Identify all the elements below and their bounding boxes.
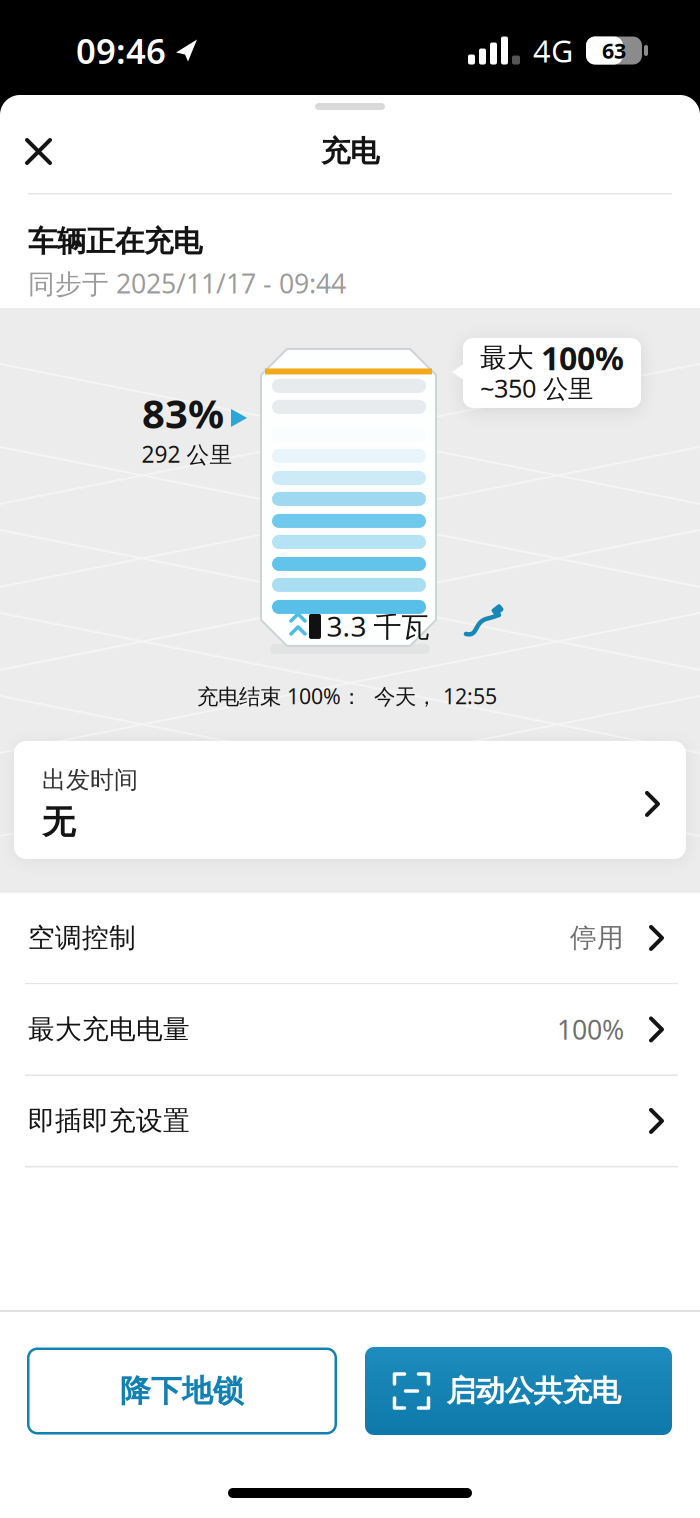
button[interactable]: 出发时间 [14,741,686,859]
staticText: 即插即充设置 [28,1105,190,1137]
staticText: 最大充电电量 [28,1013,190,1046]
staticText: 出发时间 [42,765,138,795]
staticText: 车辆正在充电 [28,223,202,259]
staticText: 同步于 2025/11/17 - 09:44 [28,265,346,301]
staticText: 63 [602,36,626,65]
staticText: 充电 [321,133,379,169]
button[interactable]: 降下地锁 [27,1347,337,1434]
staticText: 100% [557,1012,624,1047]
staticText: 最大 [480,342,534,374]
staticText: 100% [541,337,624,379]
staticText: 292 公里 [141,439,232,469]
staticText: 充电结束 100%： 今天， 12:55 [197,682,497,710]
staticText: 09:46 [76,27,166,73]
button[interactable]: 空调控制 [0,893,700,984]
button[interactable]: 关闭 [0,138,52,165]
button[interactable]: 启动公共充电 [365,1347,672,1435]
staticText: 停用 [570,922,624,954]
button[interactable]: 最大充电电量 [0,984,700,1076]
staticText: 启动公共充电 [446,1373,620,1409]
button[interactable]: 即插即充设置 [0,1076,700,1167]
staticText: 降下地锁 [120,1372,244,1410]
staticText: 83% [142,386,224,439]
staticText: 空调控制 [28,922,136,954]
staticText: 无 [42,802,75,843]
staticText: 3.3 千瓦 [326,607,429,645]
staticText: ~350 公里 [480,371,593,405]
staticText: 4G [533,30,573,71]
